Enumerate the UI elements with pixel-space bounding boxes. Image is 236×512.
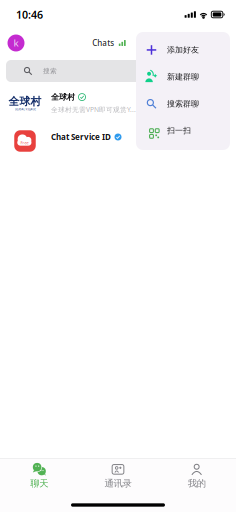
staticText: Chat Service ID [51, 132, 111, 142]
button[interactable]: 搜索 [6, 60, 230, 82]
staticText: 扫一扫 [167, 126, 191, 135]
staticText: 搜索 [43, 67, 57, 75]
staticText: 我的 [188, 478, 206, 489]
button[interactable]: 添加好友 [136, 36, 230, 63]
staticText: 聊天 [30, 478, 48, 489]
staticText: 全球村 [51, 92, 75, 102]
button[interactable]: Free [0, 122, 236, 160]
staticText: k [13, 37, 18, 49]
button[interactable]: 扫一扫 [136, 117, 230, 144]
button[interactable]: 聊天 [0, 462, 79, 490]
staticText: Free [20, 140, 28, 145]
staticText: 新建群聊 [167, 72, 199, 82]
staticText: 通讯录 [104, 478, 131, 489]
button[interactable]: 通讯录 [79, 462, 157, 490]
button[interactable]: 我的 [157, 462, 236, 490]
button[interactable]: 搜索群聊 [136, 90, 230, 117]
staticText: 10:46 [16, 7, 43, 22]
staticText: 添加好友 [167, 45, 199, 55]
button[interactable]: 新建群聊 [136, 63, 230, 90]
staticText: 全球村 [8, 95, 41, 108]
button[interactable]: 全球村 [0, 84, 236, 122]
button[interactable]: Profile [4, 31, 28, 55]
staticText: 全球村无需VPN即可观赏Y... [51, 105, 136, 114]
staticText: Chats [92, 38, 114, 48]
staticText: GLOBAL VILLAGE [14, 107, 35, 111]
staticText: 搜索群聊 [167, 99, 199, 109]
